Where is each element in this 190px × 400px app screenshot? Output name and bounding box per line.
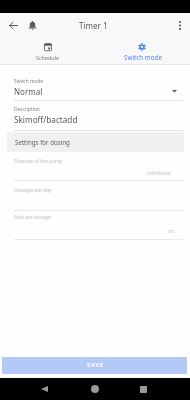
staticText: Switch mode xyxy=(14,78,43,85)
button[interactable]: Recent apps xyxy=(132,378,155,400)
staticText: Normal xyxy=(14,86,43,97)
button[interactable]: Expand switch mode xyxy=(167,84,181,98)
staticText: ml xyxy=(168,228,174,235)
button[interactable]: Back xyxy=(33,378,56,400)
staticText: Settings for dosing xyxy=(15,138,70,146)
staticText: SAVE xyxy=(87,361,105,369)
staticText: Dosages per day xyxy=(14,187,52,194)
button[interactable]: Settings for dosing xyxy=(7,132,184,152)
button[interactable]: Navigate up xyxy=(4,16,23,35)
staticText: Switch mode xyxy=(124,53,162,62)
staticText: Skimoff/bactadd xyxy=(14,114,78,125)
staticText: Timer 1 xyxy=(79,20,108,31)
staticText: Description xyxy=(14,106,40,113)
button[interactable]: Notifications xyxy=(23,16,42,35)
staticText: ml/minute xyxy=(147,170,171,177)
button[interactable]: Switch mode xyxy=(95,40,190,65)
button[interactable]: Schedule xyxy=(0,40,95,65)
button[interactable]: SAVE xyxy=(2,357,187,374)
staticText: Schedule xyxy=(36,54,59,61)
button[interactable]: More options xyxy=(170,16,189,35)
staticText: Flowrate of the pump xyxy=(14,158,63,165)
staticText: Rate per dosage xyxy=(14,214,51,221)
button[interactable]: Home xyxy=(83,378,106,400)
